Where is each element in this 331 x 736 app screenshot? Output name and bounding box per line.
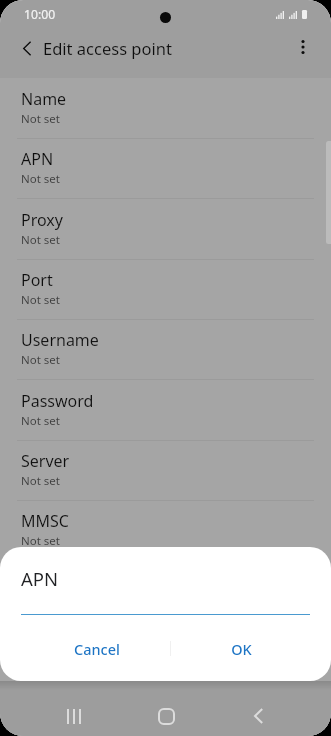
staticText: Not set [21,171,60,187]
button[interactable]: Back [238,696,278,736]
staticText: Password [21,390,94,412]
button[interactable]: Server [0,440,331,500]
staticText: Username [21,329,99,351]
button[interactable]: Recents [54,696,94,736]
staticText: OK [231,639,252,659]
button[interactable]: OK [169,632,313,666]
button[interactable]: Port [0,259,331,319]
staticText: Not set [21,533,60,549]
staticText: Proxy [21,209,63,231]
button[interactable]: Password [0,380,331,440]
staticText: Port [21,269,53,291]
button[interactable]: Name [0,78,331,138]
button[interactable]: Username [0,319,331,379]
staticText: Server [21,450,70,472]
staticText: 10:00 [24,6,56,23]
staticText: APN [21,566,59,591]
staticText: Not set [21,232,60,248]
button[interactable]: More options [286,30,320,64]
button[interactable]: Proxy [0,199,331,259]
staticText: Not set [21,111,60,127]
staticText: Cancel [74,639,120,659]
button[interactable]: APN [0,138,331,198]
staticText: Not set [21,413,60,429]
staticText: Name [21,88,67,110]
staticText: Edit access point [43,37,172,59]
staticText: MMSC [21,510,69,532]
button[interactable]: Cancel [25,632,168,666]
staticText: Not set [21,352,60,368]
staticText: Not set [21,292,60,308]
staticText: Not set [21,473,60,489]
staticText: APN [21,148,54,170]
button[interactable]: MMSC [0,500,331,560]
button[interactable]: Home [146,696,186,736]
button[interactable]: Back [10,31,44,65]
